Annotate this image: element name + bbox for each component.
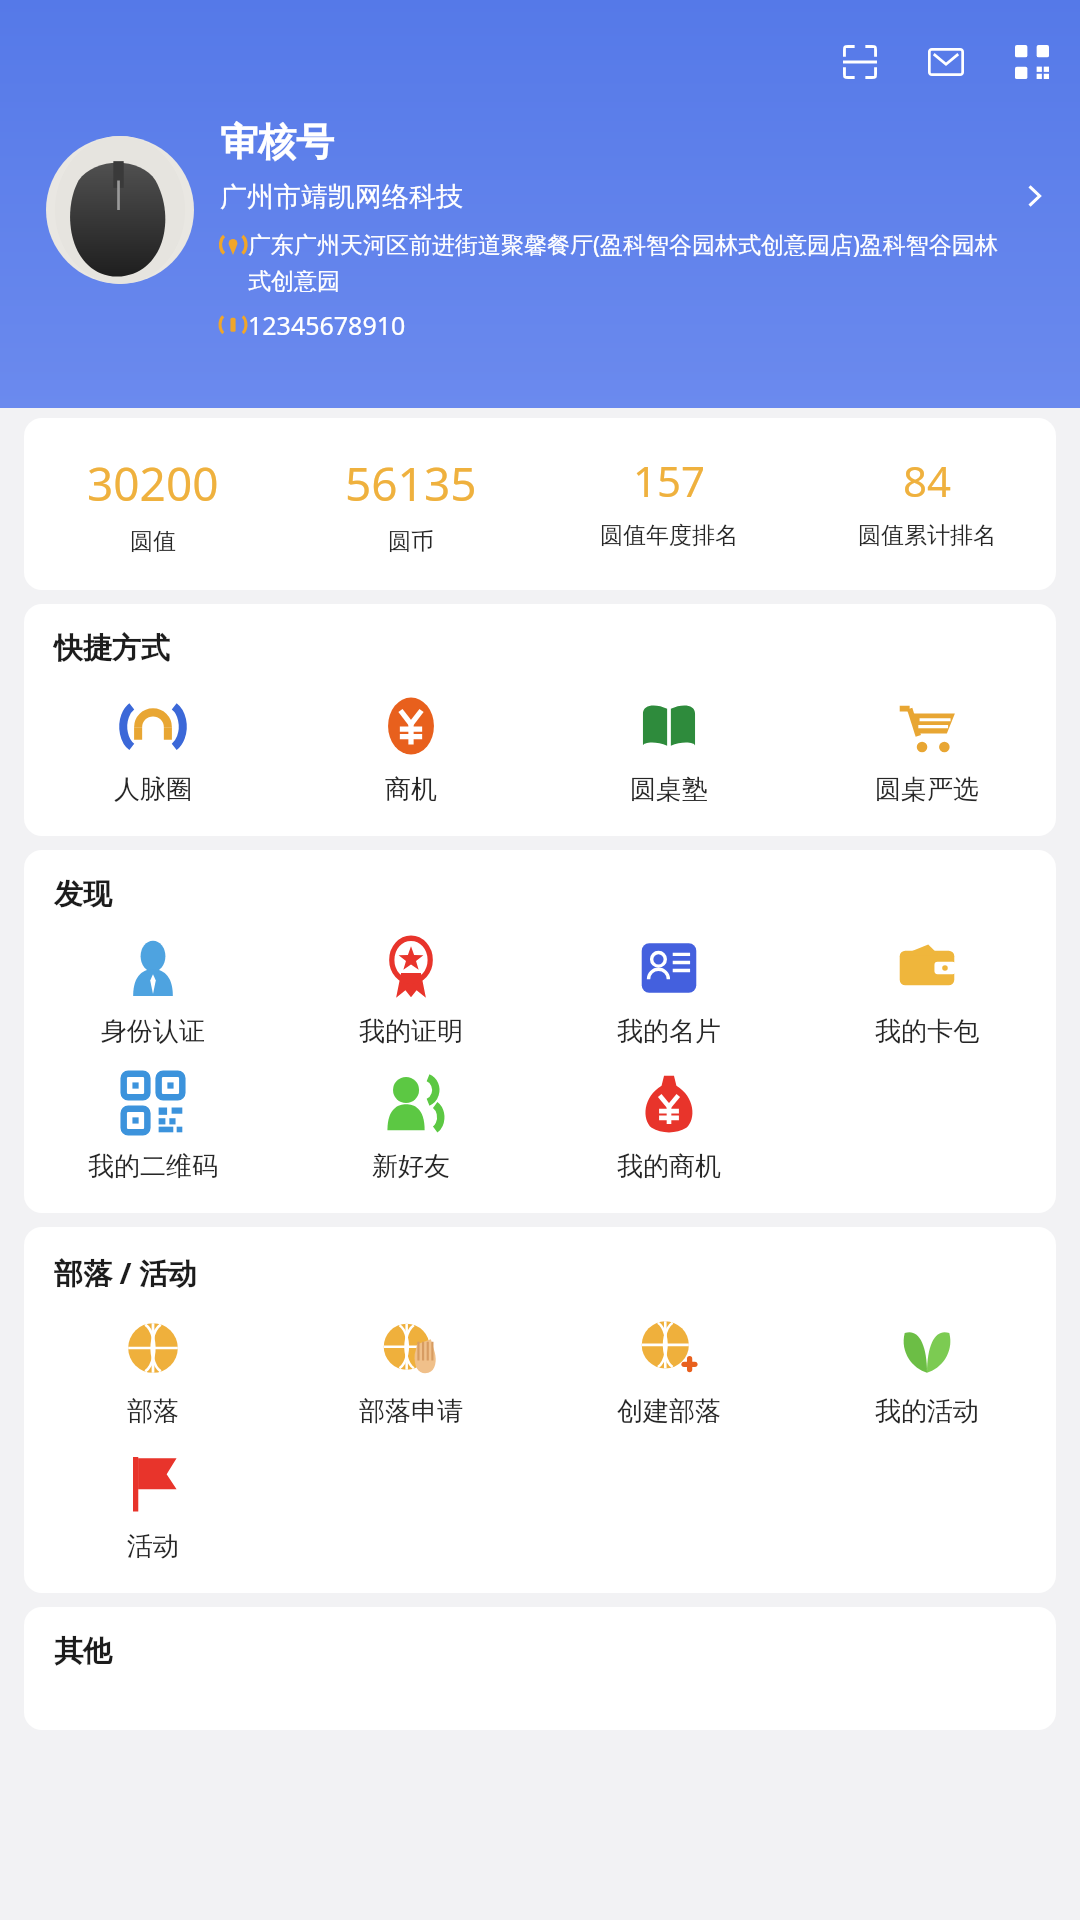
staticText: 我的商机 [617, 1150, 721, 1183]
button[interactable]: QR code [1006, 36, 1058, 88]
staticText: 快捷方式 [54, 630, 170, 667]
staticText: 圆值 [130, 527, 176, 556]
button[interactable]: 我的证明 [282, 935, 540, 1048]
button[interactable]: 创建部落 [540, 1315, 798, 1428]
staticText: 12345678910 [248, 308, 406, 342]
button[interactable]: 30200 [24, 452, 282, 556]
staticText: 身份认证 [101, 1015, 205, 1048]
staticText: 56135 [345, 452, 477, 515]
staticText: 活动 [127, 1530, 179, 1563]
staticText: 30200 [87, 452, 219, 515]
staticText: 部落 [127, 1395, 179, 1428]
button[interactable]: 我的卡包 [798, 935, 1056, 1048]
staticText: 圆币 [388, 527, 434, 556]
button[interactable]: 84 [798, 452, 1056, 550]
button[interactable]: More [1014, 176, 1054, 216]
staticText: 部落申请 [359, 1395, 463, 1428]
button[interactable]: 56135 [282, 452, 540, 556]
staticText: 广东广州天河区前进街道聚馨餐厅(盈科智谷园林式创意园店)盈科智谷园林式创意园 [248, 228, 1000, 296]
button[interactable]: 部落 [24, 1315, 282, 1428]
button[interactable]: 我的商机 [540, 1070, 798, 1183]
button[interactable]: 157 [540, 452, 798, 550]
staticText: 我的二维码 [88, 1150, 218, 1183]
button[interactable]: 身份认证 [24, 935, 282, 1048]
staticText: 圆值年度排名 [600, 521, 738, 550]
staticText: 发现 [54, 876, 112, 913]
staticText: 84 [903, 452, 952, 509]
button[interactable]: 商机 [282, 693, 540, 806]
staticText: 商机 [385, 773, 437, 806]
staticText: 圆值累计排名 [858, 521, 996, 550]
button[interactable]: 我的二维码 [24, 1070, 282, 1183]
staticText: 我的卡包 [875, 1015, 979, 1048]
button[interactable]: 部落申请 [282, 1315, 540, 1428]
staticText: 圆桌塾 [630, 773, 708, 806]
staticText: 我的活动 [875, 1395, 979, 1428]
staticText: 创建部落 [617, 1395, 721, 1428]
staticText: 157 [633, 452, 706, 509]
button[interactable]: 新好友 [282, 1070, 540, 1183]
button[interactable]: 人脉圈 [24, 693, 282, 806]
staticText: 审核号 [220, 118, 334, 166]
button[interactable]: 圆桌塾 [540, 693, 798, 806]
staticText: 其他 [54, 1633, 112, 1670]
staticText: 人脉圈 [114, 773, 192, 806]
button[interactable]: 圆桌严选 [798, 693, 1056, 806]
button[interactable]: 活动 [24, 1450, 282, 1563]
button[interactable]: 我的活动 [798, 1315, 1056, 1428]
button[interactable]: 审核号 [0, 118, 1080, 342]
staticText: 我的名片 [617, 1015, 721, 1048]
staticText: 圆桌严选 [875, 773, 979, 806]
staticText: 我的证明 [359, 1015, 463, 1048]
staticText: 广州市靖凯网络科技 [220, 180, 463, 214]
button[interactable]: Scan [834, 36, 886, 88]
staticText: 部落 / 活动 [54, 1253, 198, 1293]
button[interactable]: 我的名片 [540, 935, 798, 1048]
button[interactable]: Messages [920, 36, 972, 88]
staticText: 新好友 [372, 1150, 450, 1183]
